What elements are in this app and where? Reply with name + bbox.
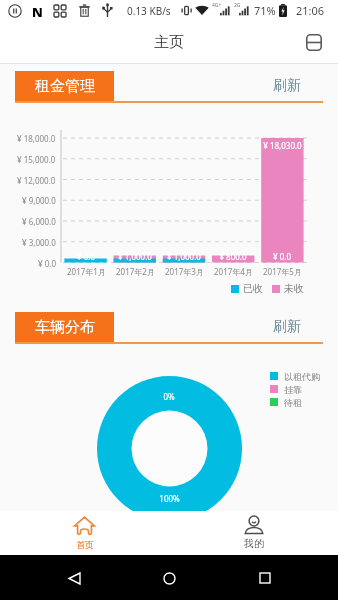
button[interactable]: Split screen <box>299 27 329 57</box>
staticText: ¥ 6,000.0 <box>22 216 56 227</box>
staticText: ¥ 1,000.0 <box>167 251 201 262</box>
staticText: 2017年4月 <box>214 266 253 277</box>
staticText: ¥ 15,000.0 <box>17 154 56 165</box>
staticText: 已收 <box>243 282 263 295</box>
staticText: 2017年1月 <box>67 266 106 277</box>
button[interactable]: 以租代购 <box>270 371 320 381</box>
staticText: 我的 <box>244 537 264 550</box>
button[interactable]: 待租 <box>270 397 302 407</box>
staticText: 0.13 KB/s <box>127 4 171 18</box>
button[interactable]: Back <box>52 556 96 600</box>
staticText: 租金管理 <box>35 77 95 96</box>
staticText: 2017年2月 <box>116 266 155 277</box>
staticText: 2G <box>234 2 241 9</box>
staticText: 2017年3月 <box>165 266 204 277</box>
staticText: 车辆分布 <box>35 318 95 337</box>
staticText: 以租代购 <box>284 371 320 381</box>
button[interactable]: Recents <box>243 556 287 600</box>
button[interactable]: Home <box>147 556 191 600</box>
staticText: 100% <box>159 493 180 504</box>
staticText: ¥ 800.0 <box>219 251 247 262</box>
staticText: 刷新 <box>273 77 301 95</box>
staticText: 刷新 <box>273 318 301 336</box>
staticText: 主页 <box>154 33 184 52</box>
staticText: ¥ 18,000.0 <box>17 133 56 144</box>
staticText: 待租 <box>284 397 302 407</box>
staticText: ¥ 0.0 <box>273 251 291 262</box>
button[interactable]: 租金管理 <box>15 71 114 101</box>
staticText: 4G+ <box>212 2 222 9</box>
staticText: ¥ 1,000.0 <box>118 251 152 262</box>
staticText: ¥ 0.0 <box>77 251 95 262</box>
staticText: ¥ 18,030.0 <box>263 140 302 151</box>
staticText: 2017年5月 <box>263 266 302 277</box>
staticText: ¥ 9,000.0 <box>22 195 56 206</box>
staticText: 71% <box>254 3 276 18</box>
staticText: 21:06 <box>296 3 325 18</box>
button[interactable]: 车辆分布 <box>15 312 114 342</box>
staticText: 未收 <box>284 282 304 295</box>
button[interactable]: 首页 <box>0 511 169 555</box>
button[interactable]: 我的 <box>169 511 338 555</box>
staticText: 挂靠 <box>284 384 302 394</box>
staticText: 首页 <box>76 539 94 550</box>
staticText: ¥ 12,000.0 <box>17 175 56 186</box>
button[interactable]: 挂靠 <box>270 384 302 394</box>
button[interactable]: 刷新 <box>273 77 301 95</box>
staticText: ¥ 0.0 <box>38 258 56 269</box>
button[interactable]: 刷新 <box>273 318 301 336</box>
staticText: 0% <box>163 391 175 402</box>
staticText: N <box>32 3 43 21</box>
staticText: ¥ 3,000.0 <box>22 237 56 248</box>
